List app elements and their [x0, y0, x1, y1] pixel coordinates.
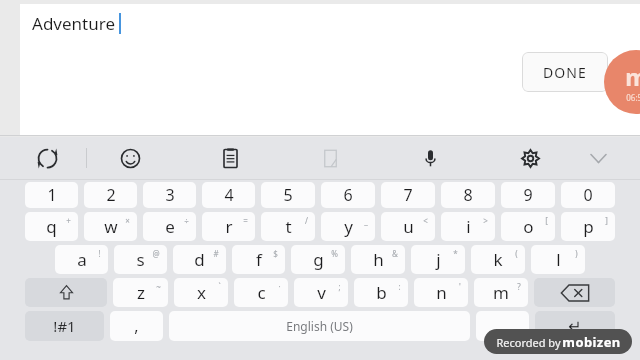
- staticText: m: [493, 281, 509, 304]
- button[interactable]: a: [55, 245, 108, 274]
- button[interactable]: 7: [381, 182, 435, 208]
- button[interactable]: r: [202, 212, 255, 241]
- button[interactable]: 5: [261, 182, 315, 208]
- staticText: !: [98, 248, 101, 259]
- button[interactable]: y: [321, 212, 375, 241]
- button[interactable]: Keyboard settings: [509, 137, 551, 179]
- staticText: .: [500, 315, 505, 337]
- staticText: m: [625, 61, 640, 92]
- staticText: z: [137, 281, 145, 304]
- button[interactable]: 4: [202, 182, 255, 208]
- staticText: s: [136, 248, 145, 271]
- button[interactable]: j: [411, 245, 465, 274]
- button[interactable]: i: [441, 212, 495, 241]
- button[interactable]: b: [354, 278, 408, 307]
- staticText: <: [423, 215, 428, 226]
- staticText: %: [331, 248, 338, 259]
- staticText: 4: [224, 184, 234, 206]
- button[interactable]: e: [143, 212, 196, 241]
- staticText: y: [344, 215, 353, 238]
- button[interactable]: Shift: [25, 278, 107, 307]
- button[interactable]: z: [113, 278, 168, 307]
- staticText: !#1: [53, 316, 76, 336]
- button[interactable]: x: [174, 278, 228, 307]
- button[interactable]: Stickers: [309, 137, 351, 179]
- button[interactable]: h: [351, 245, 405, 274]
- button[interactable]: ,: [110, 311, 163, 341]
- button[interactable]: Voice input: [409, 137, 451, 179]
- button[interactable]: d: [173, 245, 226, 274]
- staticText: mobizen: [562, 333, 621, 351]
- button[interactable]: c: [234, 278, 288, 307]
- staticText: f: [256, 248, 262, 271]
- staticText: ,: [134, 315, 139, 337]
- button[interactable]: 2: [84, 182, 137, 208]
- staticText: ·: [278, 281, 281, 292]
- staticText: 5: [283, 184, 293, 206]
- button[interactable]: 3: [143, 182, 196, 208]
- staticText: @: [152, 248, 160, 259]
- button[interactable]: !#1: [25, 311, 104, 341]
- button[interactable]: p: [561, 212, 615, 241]
- staticText: 9: [523, 184, 533, 206]
- staticText: ÷: [184, 215, 189, 226]
- button[interactable]: 6: [321, 182, 375, 208]
- button[interactable]: 1: [25, 182, 78, 208]
- button[interactable]: n: [414, 278, 468, 307]
- staticText: =: [243, 215, 248, 226]
- staticText: &: [392, 248, 398, 259]
- staticText: DONE: [543, 63, 587, 82]
- staticText: `: [218, 281, 221, 292]
- staticText: j: [436, 248, 441, 271]
- button[interactable]: o: [501, 212, 555, 241]
- staticText: p: [583, 215, 594, 238]
- staticText: o: [523, 215, 534, 238]
- button[interactable]: g: [291, 245, 345, 274]
- button[interactable]: 9: [501, 182, 555, 208]
- button[interactable]: f: [232, 245, 285, 274]
- button[interactable]: m: [474, 278, 528, 307]
- button[interactable]: ↵: [535, 311, 615, 341]
- button[interactable]: DONE: [522, 52, 608, 92]
- button[interactable]: w: [84, 212, 137, 241]
- staticText: b: [376, 281, 387, 304]
- button[interactable]: Emoji: [109, 137, 151, 179]
- button[interactable]: Translate: [26, 137, 68, 179]
- staticText: [: [545, 215, 548, 226]
- staticText: 2: [106, 184, 116, 206]
- button[interactable]: t: [261, 212, 315, 241]
- staticText: 3: [165, 184, 175, 206]
- button[interactable]: Clipboard: [209, 137, 251, 179]
- button[interactable]: k: [471, 245, 525, 274]
- staticText: a: [77, 248, 87, 271]
- staticText: 0: [583, 184, 593, 206]
- staticText: t: [285, 215, 292, 238]
- button[interactable]: 8: [441, 182, 495, 208]
- staticText: #: [213, 248, 219, 259]
- staticText: 7: [403, 184, 413, 206]
- staticText: n: [436, 281, 447, 304]
- staticText: >: [483, 215, 488, 226]
- staticText: d: [194, 248, 205, 271]
- button[interactable]: q: [25, 212, 78, 241]
- button[interactable]: v: [294, 278, 348, 307]
- button[interactable]: Mobizen recorder: [604, 50, 640, 114]
- staticText: ': [459, 281, 461, 292]
- staticText: e: [165, 215, 175, 238]
- staticText: $: [273, 248, 278, 259]
- button[interactable]: u: [381, 212, 435, 241]
- staticText: Recorded by: [495, 335, 562, 350]
- staticText: 06:58: [626, 92, 640, 103]
- staticText: c: [257, 281, 266, 304]
- button[interactable]: Hide keyboard: [577, 137, 619, 179]
- button[interactable]: l: [531, 245, 585, 274]
- staticText: :: [398, 281, 401, 292]
- staticText: /: [305, 215, 308, 226]
- staticText: ): [575, 248, 578, 259]
- button[interactable]: .: [476, 311, 529, 341]
- button[interactable]: English (US): [169, 311, 470, 341]
- button[interactable]: Backspace: [534, 278, 615, 307]
- staticText: w: [104, 215, 118, 238]
- button[interactable]: s: [114, 245, 167, 274]
- button[interactable]: 0: [561, 182, 615, 208]
